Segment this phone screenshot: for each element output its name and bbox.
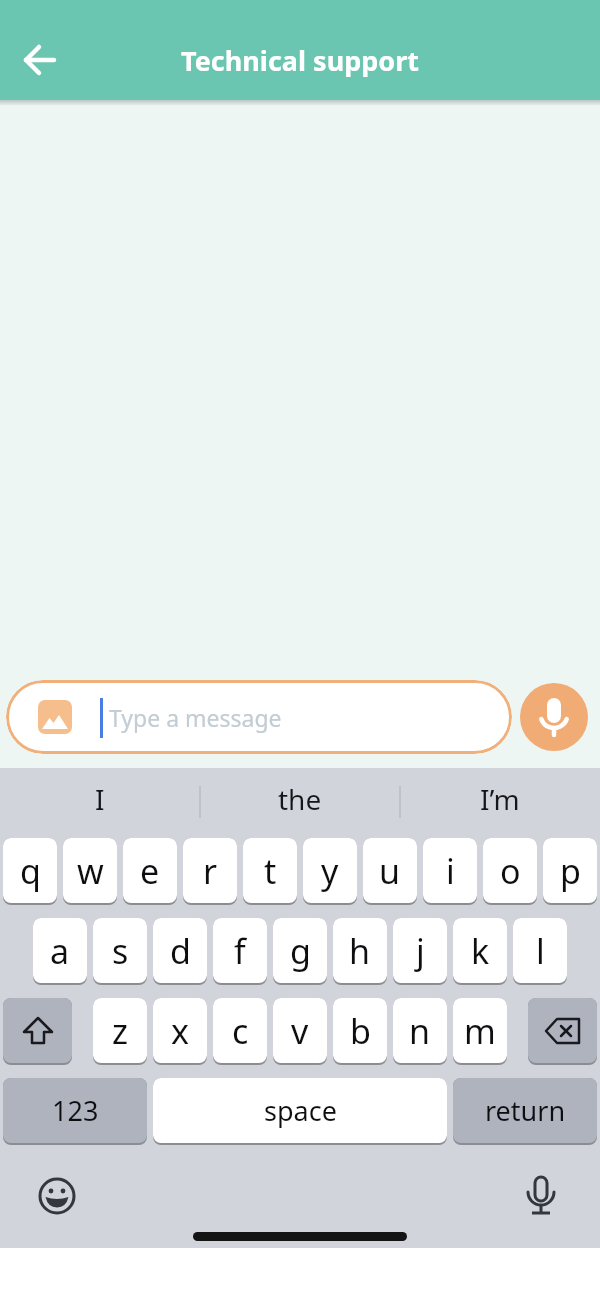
button[interactable]: I xyxy=(5,768,195,830)
button[interactable]: m xyxy=(453,998,507,1063)
button[interactable]: f xyxy=(213,918,267,983)
staticText: i xyxy=(446,848,455,894)
button[interactable]: z xyxy=(93,998,147,1063)
button[interactable] xyxy=(3,998,72,1063)
button[interactable]: the xyxy=(205,768,395,830)
button[interactable]: c xyxy=(213,998,267,1063)
button[interactable]: b xyxy=(333,998,387,1063)
staticText: Technical support xyxy=(181,42,419,79)
button[interactable]: i xyxy=(423,838,477,903)
staticText: k xyxy=(471,928,490,974)
staticText: d xyxy=(170,928,191,974)
button[interactable]: y xyxy=(303,838,357,903)
button[interactable]: d xyxy=(153,918,207,983)
staticText: h xyxy=(349,928,371,974)
button[interactable]: Type a message xyxy=(6,680,512,754)
staticText: t xyxy=(264,848,277,894)
staticText: return xyxy=(485,1092,566,1129)
staticText: l xyxy=(536,928,545,974)
staticText: w xyxy=(77,848,104,894)
staticText: v xyxy=(291,1008,309,1054)
button[interactable]: 123 xyxy=(3,1078,147,1143)
button[interactable]: l xyxy=(513,918,567,983)
button[interactable] xyxy=(12,32,68,88)
staticText: n xyxy=(409,1008,431,1054)
staticText: b xyxy=(350,1008,371,1054)
button[interactable]: w xyxy=(63,838,117,903)
button[interactable]: return xyxy=(453,1078,597,1143)
staticText: u xyxy=(379,848,401,894)
button[interactable]: v xyxy=(273,998,327,1063)
button[interactable]: space xyxy=(153,1078,447,1143)
button[interactable] xyxy=(511,1166,571,1226)
staticText: the xyxy=(278,780,322,818)
staticText: e xyxy=(140,848,160,894)
staticText: f xyxy=(234,928,246,974)
staticText: m xyxy=(464,1008,496,1054)
staticText: o xyxy=(500,848,521,894)
button[interactable]: x xyxy=(153,998,207,1063)
button[interactable] xyxy=(520,683,588,751)
button[interactable]: j xyxy=(393,918,447,983)
staticText: p xyxy=(560,848,581,894)
button[interactable] xyxy=(528,998,597,1063)
button[interactable]: e xyxy=(123,838,177,903)
staticText: g xyxy=(290,928,311,974)
button[interactable]: k xyxy=(453,918,507,983)
staticText: c xyxy=(232,1008,249,1054)
staticText: r xyxy=(203,848,218,894)
staticText: z xyxy=(112,1008,128,1054)
staticText: Type a message xyxy=(109,702,282,733)
button[interactable]: q xyxy=(3,838,57,903)
staticText: x xyxy=(171,1008,189,1054)
button[interactable]: g xyxy=(273,918,327,983)
staticText: I xyxy=(95,780,105,818)
button[interactable]: o xyxy=(483,838,537,903)
button[interactable] xyxy=(27,1166,87,1226)
staticText: 123 xyxy=(52,1092,99,1129)
staticText: q xyxy=(20,848,41,894)
button[interactable]: t xyxy=(243,838,297,903)
button[interactable]: h xyxy=(333,918,387,983)
button[interactable]: I’m xyxy=(405,768,595,830)
button[interactable]: u xyxy=(363,838,417,903)
button[interactable]: p xyxy=(543,838,597,903)
staticText: I’m xyxy=(480,780,520,818)
button[interactable]: n xyxy=(393,998,447,1063)
button[interactable]: a xyxy=(33,918,87,983)
staticText: j xyxy=(416,928,425,974)
staticText: a xyxy=(50,928,70,974)
button[interactable]: s xyxy=(93,918,147,983)
button[interactable]: r xyxy=(183,838,237,903)
staticText: y xyxy=(321,848,339,894)
staticText: space xyxy=(264,1092,337,1129)
staticText: s xyxy=(112,928,129,974)
